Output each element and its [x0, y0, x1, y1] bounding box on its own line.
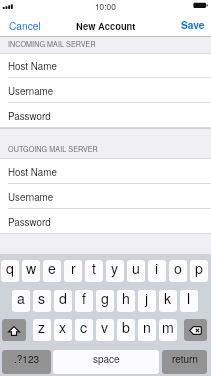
staticText: d [59, 290, 67, 308]
staticText: v [101, 319, 109, 337]
staticText: n [143, 319, 151, 337]
button[interactable]: Username [0, 184, 211, 209]
staticText: l [187, 290, 191, 308]
button[interactable]: i [148, 260, 166, 282]
button[interactable]: b [117, 319, 135, 341]
button[interactable]: r [64, 260, 82, 282]
staticText: h [122, 290, 130, 308]
button[interactable]: k [159, 290, 177, 312]
staticText: s [38, 290, 46, 308]
staticText: f [82, 290, 86, 308]
button[interactable]: n [138, 319, 156, 341]
button[interactable]: f [75, 290, 93, 312]
button[interactable]: return [162, 350, 207, 374]
button[interactable]: Shift [2, 319, 26, 341]
staticText: Username [8, 190, 54, 204]
staticText: g [101, 290, 109, 308]
staticText: Username [8, 84, 54, 98]
button[interactable]: x [54, 319, 72, 341]
button[interactable]: z [33, 319, 51, 341]
staticText: p [195, 260, 203, 278]
staticText: y [111, 260, 119, 278]
button[interactable]: p [190, 260, 208, 282]
button[interactable]: e [43, 260, 61, 282]
button[interactable]: j [138, 290, 156, 312]
button[interactable]: l [180, 290, 198, 312]
button[interactable]: Cancel [0, 14, 47, 36]
staticText: t [92, 260, 96, 278]
button[interactable]: t [85, 260, 103, 282]
staticText: i [155, 260, 159, 278]
staticText: u [132, 260, 140, 278]
button[interactable]: m [159, 319, 177, 341]
button[interactable]: u [127, 260, 145, 282]
staticText: space [93, 352, 120, 366]
staticText: Password [8, 215, 51, 229]
staticText: c [80, 319, 88, 337]
button[interactable]: q [1, 260, 19, 282]
button[interactable]: .?123 [2, 350, 51, 374]
staticText: x [59, 319, 67, 337]
button[interactable]: Password [0, 103, 211, 128]
staticText: Cancel [9, 18, 41, 32]
staticText: Password [8, 109, 51, 123]
button[interactable]: o [169, 260, 187, 282]
button[interactable]: v [96, 319, 114, 341]
button[interactable]: g [96, 290, 114, 312]
staticText: o [174, 260, 182, 278]
staticText: k [164, 290, 172, 308]
staticText: OUTGOING MAIL SERVER [8, 144, 98, 154]
button[interactable]: c [75, 319, 93, 341]
staticText: 10:00 [95, 0, 116, 12]
staticText: j [145, 290, 149, 308]
staticText: Host Name [8, 165, 57, 179]
button[interactable]: a [12, 290, 30, 312]
staticText: m [162, 319, 174, 337]
staticText: return [172, 352, 198, 366]
button[interactable]: Backspace [184, 319, 207, 341]
staticText: w [26, 260, 37, 278]
button[interactable]: Password [0, 209, 211, 234]
button[interactable]: y [106, 260, 124, 282]
button[interactable]: h [117, 290, 135, 312]
button[interactable]: Save [175, 14, 211, 36]
staticText: Host Name [8, 59, 57, 73]
staticText: z [38, 319, 46, 337]
staticText: Save [181, 18, 205, 32]
button[interactable]: Username [0, 78, 211, 103]
staticText: INCOMING MAIL SERVER [8, 39, 96, 49]
button[interactable]: s [33, 290, 51, 312]
button[interactable]: d [54, 290, 72, 312]
button[interactable]: Host Name [0, 54, 211, 78]
staticText: r [71, 260, 76, 278]
staticText: q [6, 260, 14, 278]
button[interactable]: space [53, 350, 159, 374]
button[interactable]: w [22, 260, 40, 282]
staticText: b [122, 319, 130, 337]
button[interactable]: Host Name [0, 159, 211, 184]
staticText: e [48, 260, 56, 278]
staticText: New Account [76, 19, 136, 32]
staticText: .?123 [14, 352, 40, 366]
staticText: a [17, 290, 25, 308]
